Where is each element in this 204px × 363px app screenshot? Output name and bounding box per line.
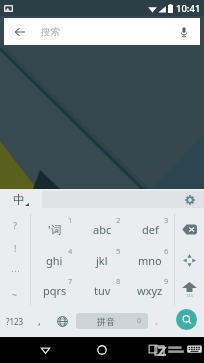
staticText: def [142, 222, 159, 237]
staticText: 3 [164, 215, 169, 225]
staticText: ? [13, 219, 17, 231]
button[interactable]: , [30, 305, 48, 337]
button[interactable]: 拼音 [76, 313, 148, 329]
button[interactable]: abc [78, 214, 126, 245]
button[interactable]: ! [0, 236, 30, 259]
staticText: ~ [12, 288, 18, 300]
staticText: '词 [48, 222, 62, 237]
staticText: 5 [116, 246, 121, 256]
staticText: 0 [137, 316, 142, 326]
staticText: ⋯ [11, 266, 20, 276]
button[interactable]: pqrs [31, 275, 78, 305]
button[interactable]: Back [4, 18, 35, 45]
button[interactable]: Recent apps [144, 337, 174, 363]
button[interactable]: mno [126, 245, 174, 275]
button[interactable]: Search [176, 309, 197, 330]
button[interactable]: Keyboard settings [42, 191, 204, 208]
button[interactable]: ? [0, 214, 30, 236]
staticText: pqrs [43, 283, 67, 298]
staticText: abc [93, 222, 112, 237]
staticText: 拼音 [97, 316, 115, 327]
button[interactable]: ghi [31, 245, 78, 275]
button[interactable]: ?123 [0, 305, 30, 337]
button[interactable]: Keyboard settings [176, 191, 204, 208]
staticText: mno [138, 253, 162, 268]
button[interactable]: '词 [31, 214, 78, 245]
staticText: ?123 [6, 316, 24, 327]
button[interactable]: Switch to numbers [175, 275, 204, 305]
button[interactable]: ~ [0, 282, 30, 305]
staticText: ghi [46, 253, 63, 268]
staticText: 4 [68, 246, 73, 256]
staticText: 7 [68, 276, 73, 286]
staticText: 123 [186, 293, 193, 298]
staticText: 8 [116, 276, 121, 286]
button[interactable]: Back [4, 18, 200, 45]
button[interactable]: ⋯ [0, 259, 30, 282]
button[interactable]: wxyz [126, 275, 174, 305]
staticText: , [38, 314, 41, 328]
button[interactable]: Home [87, 337, 117, 363]
staticText: 2 [116, 215, 121, 225]
button[interactable]: jkl [78, 245, 126, 275]
staticText: 10:41 [176, 2, 201, 15]
button[interactable]: tuv [78, 275, 126, 305]
staticText: 9 [164, 276, 169, 286]
button[interactable]: Change keyboard language [48, 305, 76, 337]
button[interactable]: Move cursor [175, 245, 204, 275]
staticText: jkl [96, 253, 108, 268]
staticText: 搜索 [41, 26, 167, 38]
staticText: ! [14, 242, 17, 254]
button[interactable]: Back [30, 337, 60, 363]
button[interactable]: Voice search [167, 18, 200, 45]
button[interactable]: Backspace [175, 214, 204, 245]
staticText: 中 [13, 192, 25, 207]
staticText: wxyz [137, 283, 163, 298]
staticText: 。 [155, 317, 162, 326]
staticText: 6 [164, 246, 169, 256]
button[interactable]: def [126, 214, 174, 245]
button[interactable]: 中 [0, 189, 42, 209]
staticText: tuv [94, 283, 111, 298]
staticText: 1 [68, 215, 73, 225]
